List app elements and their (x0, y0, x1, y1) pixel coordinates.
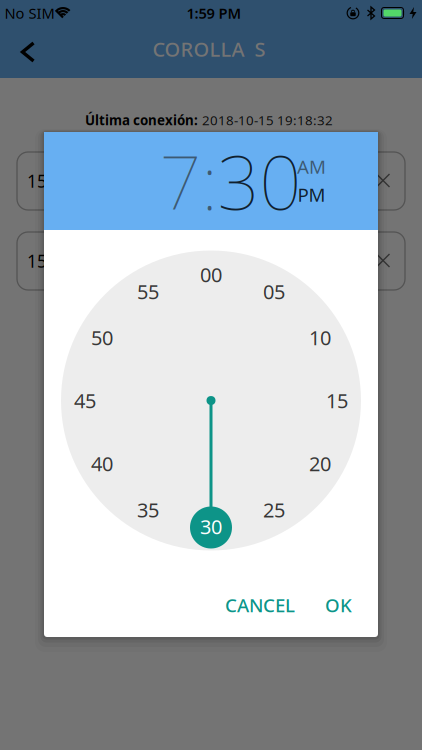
staticText: Última conexión: (85, 111, 198, 129)
button[interactable]: 15:30 (17, 152, 405, 210)
button[interactable]: 7 (159, 132, 201, 230)
staticText: 15:30 (27, 249, 72, 272)
staticText: PM (297, 182, 325, 207)
staticText: 00 (200, 261, 222, 288)
staticText: No SIM (4, 3, 54, 23)
staticText: 55 (137, 278, 159, 305)
staticText: COROLLA S (152, 36, 265, 62)
staticText: 45 (74, 387, 96, 414)
staticText: 25 (263, 496, 285, 523)
staticText: 15 (326, 387, 348, 414)
staticText: 30 (217, 132, 301, 230)
staticText: 20 (309, 450, 331, 477)
staticText: 30 (200, 513, 222, 540)
button[interactable]: CANCEL (217, 583, 303, 627)
staticText: 40 (91, 450, 113, 477)
staticText: : (201, 132, 217, 230)
button[interactable] (368, 166, 397, 195)
staticText: 35 (137, 496, 159, 523)
staticText: 1:59 PM (186, 3, 241, 23)
staticText: AM (297, 154, 326, 179)
staticText: 15:30 (27, 169, 72, 192)
button[interactable]: AM (297, 154, 326, 179)
button[interactable] (368, 246, 397, 275)
staticText: OK (325, 593, 352, 617)
staticText: 50 (91, 324, 113, 351)
button[interactable] (9, 29, 47, 74)
button[interactable]: 15:30 (17, 232, 405, 290)
staticText: CANCEL (225, 593, 295, 617)
staticText: 10 (309, 324, 331, 351)
staticText: 2018-10-15 19:18:32 (202, 111, 333, 129)
button[interactable]: 30 (217, 132, 301, 230)
staticText: 05 (263, 278, 285, 305)
button[interactable]: OK (317, 583, 360, 627)
button[interactable]: PM (297, 182, 325, 207)
staticText: 7 (159, 132, 201, 230)
